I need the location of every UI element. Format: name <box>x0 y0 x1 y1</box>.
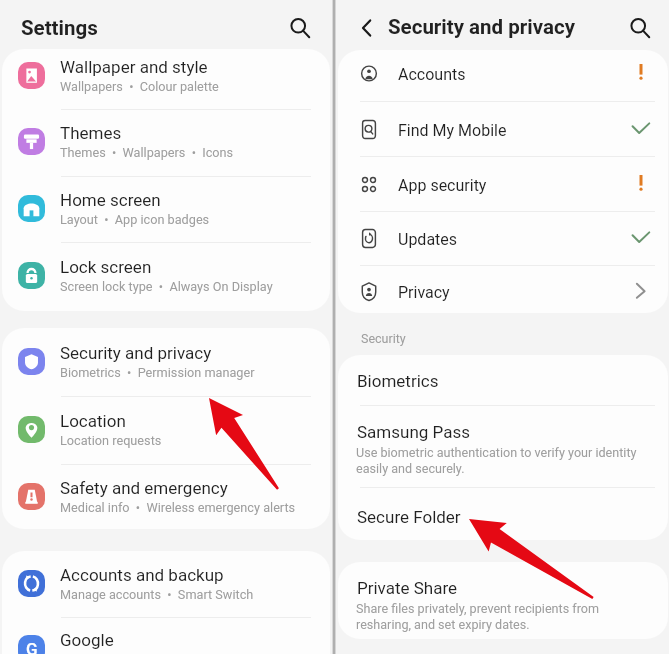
staticText: Themes • Wallpapers • Icons <box>60 145 234 160</box>
staticText: Wallpapers • Colour palette <box>60 79 219 94</box>
staticText: Safety and emergency <box>60 478 228 498</box>
staticText: Layout • App icon badges <box>60 212 210 227</box>
button[interactable]: Security and privacy <box>0 329 332 395</box>
staticText: Secure Folder <box>357 507 461 527</box>
button[interactable]: Wallpaper and style <box>0 43 332 109</box>
staticText: Biometrics • Permission manager <box>60 365 255 380</box>
staticText: Location <box>60 411 126 431</box>
button[interactable]: App security <box>336 157 669 211</box>
staticText: Accounts and backup <box>60 565 224 585</box>
button[interactable]: Accounts <box>336 46 669 100</box>
staticText: Updates <box>398 230 458 249</box>
staticText: Privacy <box>398 283 450 302</box>
button[interactable]: G <box>0 616 332 654</box>
staticText: Google <box>60 630 114 650</box>
button[interactable]: Themes <box>0 109 332 175</box>
button[interactable]: Accounts and backup <box>0 551 332 617</box>
staticText: Themes <box>60 123 122 143</box>
staticText: App security <box>398 176 487 195</box>
button[interactable]: Search <box>283 11 317 45</box>
staticText: Samsung Pass <box>357 422 470 442</box>
staticText: Lock screen <box>60 257 152 277</box>
button[interactable]: Safety and emergency <box>0 464 332 530</box>
button[interactable]: Samsung Pass <box>336 419 669 499</box>
staticText: Wallpaper and style <box>60 57 208 77</box>
staticText: Private Share <box>357 578 458 598</box>
button[interactable]: Secure Folder <box>336 504 669 549</box>
staticText: Screen lock type • Always On Display <box>60 279 273 294</box>
staticText: Accounts <box>398 65 466 84</box>
staticText: Security and privacy <box>388 15 575 39</box>
staticText: Medical info • Wireless emergency alerts <box>60 500 296 515</box>
button[interactable]: Private Share <box>336 575 669 654</box>
button[interactable]: Updates <box>336 211 669 265</box>
staticText: Location requests <box>60 433 162 448</box>
button[interactable]: Biometrics <box>336 368 669 413</box>
staticText: Share files privately, prevent recipient… <box>356 601 600 632</box>
button[interactable]: Find My Mobile <box>336 102 669 156</box>
button[interactable]: Lock screen <box>0 243 332 309</box>
staticText: G <box>26 639 38 654</box>
staticText: Security and privacy <box>60 343 212 363</box>
staticText: Biometrics <box>357 371 439 391</box>
button[interactable]: Privacy <box>336 264 669 318</box>
button[interactable]: Location <box>0 397 332 463</box>
button[interactable]: Home screen <box>0 176 332 242</box>
staticText: Find My Mobile <box>398 121 507 140</box>
button[interactable]: Back <box>350 11 384 45</box>
staticText: Manage accounts • Smart Switch <box>60 587 254 602</box>
button[interactable]: Search <box>623 11 657 45</box>
staticText: Security <box>361 331 406 346</box>
staticText: Settings <box>21 16 98 40</box>
staticText: Home screen <box>60 190 161 210</box>
staticText: Use biometric authentication to verify y… <box>356 445 637 476</box>
